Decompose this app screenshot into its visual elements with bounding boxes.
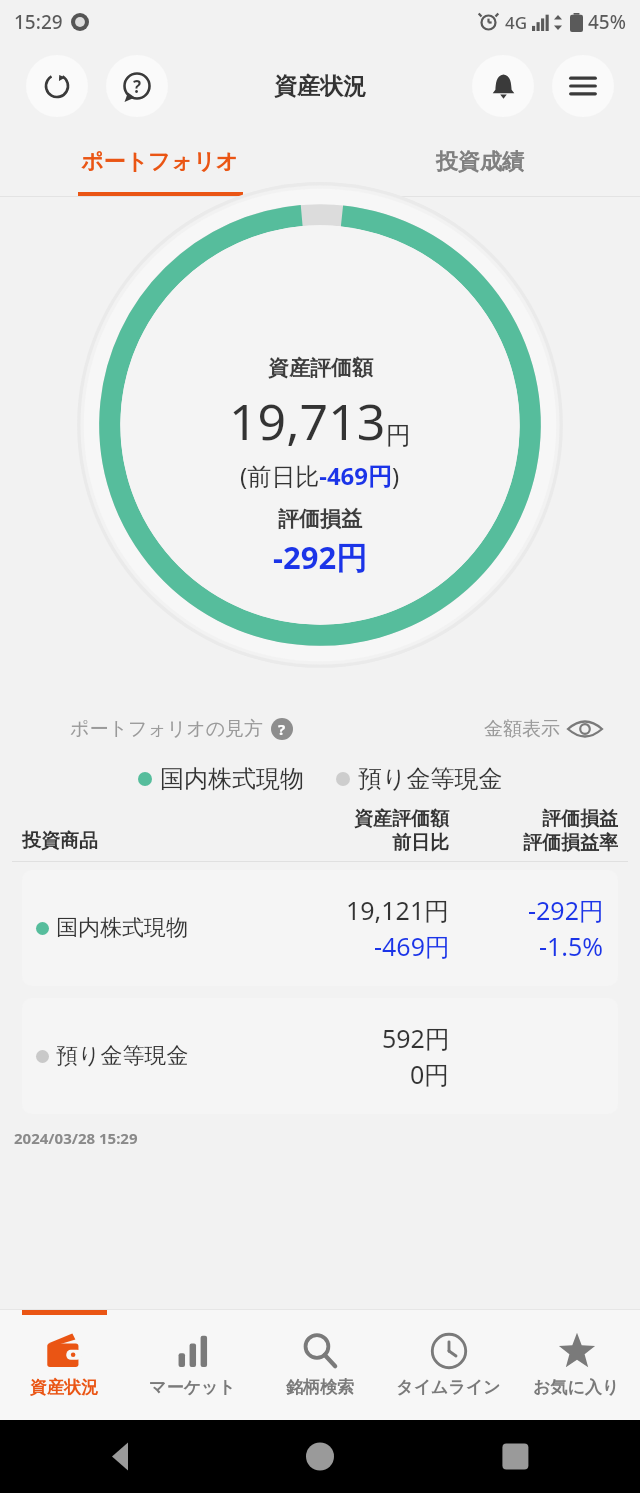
staticText: 資産評価額: [354, 807, 449, 831]
button[interactable]: お気に入り: [512, 1310, 640, 1420]
staticText: (前日比-469円): [240, 459, 400, 492]
staticText: 国内株式現物: [56, 914, 188, 942]
staticText: ?: [133, 75, 142, 98]
staticText: 預り金等現金: [56, 1042, 189, 1070]
staticText: 金額表示: [484, 717, 560, 741]
staticText: ?: [278, 719, 286, 739]
staticText: 15:29: [14, 9, 63, 35]
staticText: 19,713: [229, 387, 386, 455]
button[interactable]: タイムライン: [384, 1310, 512, 1420]
staticText: 4G: [505, 11, 528, 34]
staticText: -292円: [528, 893, 604, 927]
button[interactable]: 預り金等現金: [336, 764, 503, 794]
button[interactable]: 金額表示: [484, 717, 602, 741]
button[interactable]: ポートフォリオ: [0, 128, 320, 196]
staticText: ポートフォリオの見方: [70, 717, 264, 741]
staticText: 評価損益率: [523, 831, 618, 855]
staticText: 19,121円: [346, 893, 450, 927]
staticText: タイムライン: [396, 1377, 501, 1398]
staticText: 資産状況: [30, 1377, 98, 1398]
staticText: 投資成績: [436, 148, 524, 176]
staticText: 前日比: [392, 831, 449, 855]
button[interactable]: 国内株式現物: [22, 870, 618, 986]
staticText: 資産状況: [274, 72, 366, 101]
staticText: 592円: [382, 1021, 450, 1055]
button[interactable]: Refresh: [26, 55, 88, 117]
staticText: 国内株式現物: [160, 764, 304, 794]
staticText: 円: [386, 420, 411, 451]
staticText: 評価損益: [278, 506, 362, 532]
button[interactable]: 預り金等現金: [22, 998, 618, 1114]
staticText: 銘柄検索: [286, 1377, 354, 1398]
button[interactable]: Menu: [552, 55, 614, 117]
button[interactable]: 投資成績: [320, 128, 640, 196]
button[interactable]: 資産状況: [0, 1310, 128, 1420]
button[interactable]: 銘柄検索: [256, 1310, 384, 1420]
staticText: 資産評価額: [268, 355, 373, 381]
button[interactable]: マーケット: [128, 1310, 256, 1420]
button[interactable]: Notifications: [472, 55, 534, 117]
button[interactable]: ポートフォリオの見方: [70, 717, 293, 741]
staticText: マーケット: [149, 1377, 236, 1398]
staticText: 45%: [588, 9, 626, 35]
staticText: 投資商品: [22, 829, 98, 853]
button[interactable]: Help: [106, 55, 168, 117]
staticText: -1.5%: [539, 929, 604, 963]
button[interactable]: 国内株式現物: [138, 764, 304, 794]
staticText: 預り金等現金: [358, 764, 503, 794]
staticText: -292円: [273, 536, 368, 578]
staticText: -469円: [374, 929, 450, 963]
staticText: 2024/03/28 15:29: [14, 1128, 138, 1148]
staticText: お気に入り: [533, 1377, 620, 1398]
staticText: 0円: [410, 1057, 450, 1091]
staticText: 評価損益: [542, 807, 618, 831]
staticText: ポートフォリオ: [81, 148, 239, 176]
